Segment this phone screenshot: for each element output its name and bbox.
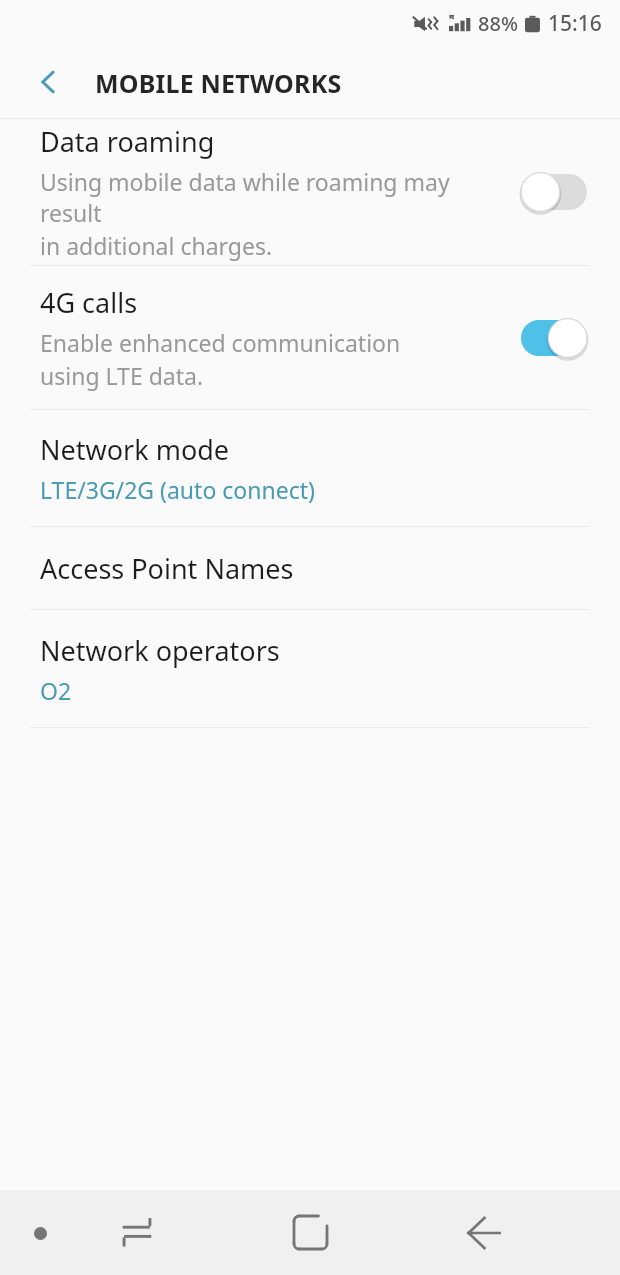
button[interactable]: Network operators bbox=[0, 610, 620, 727]
staticText: Network operators bbox=[40, 632, 280, 669]
staticText: MOBILE NETWORKS bbox=[95, 66, 342, 100]
staticText: Network mode bbox=[40, 431, 230, 468]
button[interactable]: Network mode bbox=[0, 410, 620, 526]
staticText: 88% bbox=[478, 10, 518, 37]
staticText: using LTE data. bbox=[40, 360, 204, 391]
button[interactable]: Home bbox=[265, 1190, 355, 1275]
button[interactable]: Keyboard indicator bbox=[10, 1203, 70, 1263]
button[interactable]: Toggle, on bbox=[514, 313, 594, 363]
staticText: Enable enhanced communication bbox=[40, 327, 401, 358]
staticText: 15:16 bbox=[548, 9, 602, 38]
staticText: Data roaming bbox=[40, 123, 215, 160]
staticText: O2 bbox=[40, 675, 72, 706]
staticText: LTE/3G/2G (auto connect) bbox=[40, 474, 315, 505]
button[interactable]: Navigate up bbox=[22, 55, 76, 109]
button[interactable]: Recents bbox=[92, 1190, 182, 1275]
staticText: Using mobile data while roaming may resu… bbox=[40, 166, 500, 228]
button[interactable]: Data roaming bbox=[0, 119, 620, 265]
button[interactable]: Access Point Names bbox=[0, 527, 620, 609]
staticText: Access Point Names bbox=[40, 550, 294, 587]
button[interactable]: 4G calls bbox=[0, 266, 620, 409]
staticText: 4G calls bbox=[40, 284, 138, 321]
button[interactable]: Back bbox=[438, 1190, 528, 1275]
staticText: in additional charges. bbox=[40, 230, 273, 261]
button[interactable]: Toggle, off bbox=[514, 167, 594, 217]
